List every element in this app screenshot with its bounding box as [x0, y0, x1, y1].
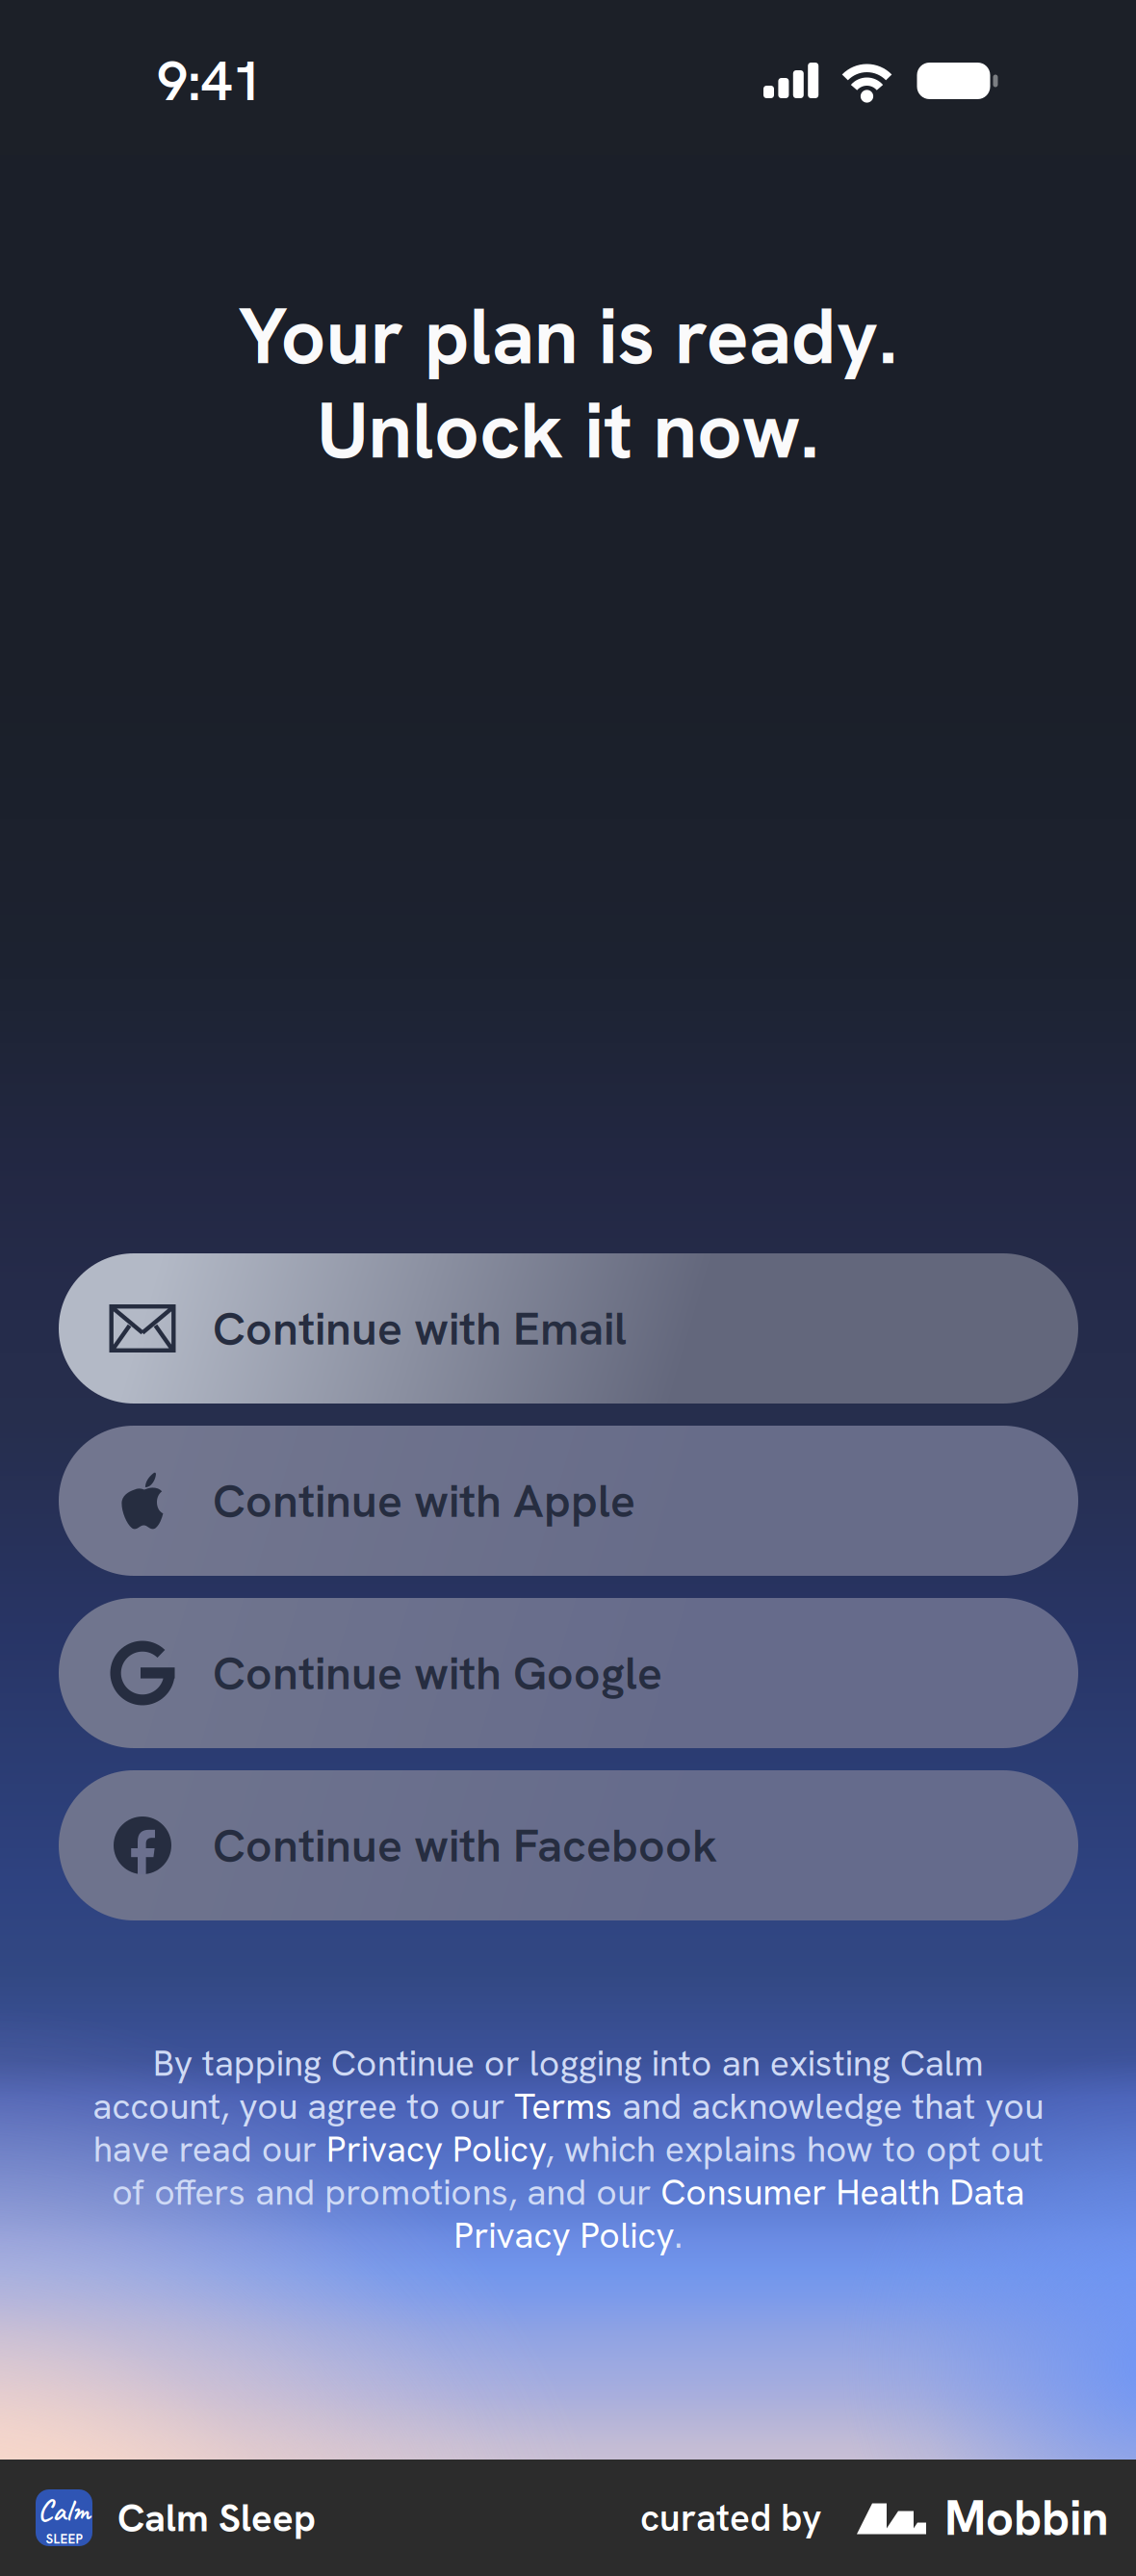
- staticText: By tapping Continue or logging into an e…: [92, 2040, 1044, 2259]
- staticText: SLEEP: [46, 2531, 82, 2548]
- staticText: 9:41: [157, 45, 263, 117]
- staticText: curated by: [640, 2494, 821, 2542]
- staticText: Continue with Email: [213, 1298, 627, 1358]
- button[interactable]: Continue with Apple: [59, 1426, 1078, 1576]
- staticText: Calm Sleep: [117, 2493, 316, 2543]
- staticText: Mobbin: [944, 2486, 1109, 2550]
- staticText: Your plan is ready. Unlock it now.: [238, 285, 898, 481]
- staticText: Continue with Apple: [213, 1471, 635, 1531]
- button[interactable]: Continue with Email: [59, 1253, 1078, 1404]
- staticText: Continue with Google: [213, 1643, 662, 1703]
- staticText: Calm: [38, 2491, 90, 2530]
- staticText: Continue with Facebook: [213, 1815, 717, 1875]
- button[interactable]: Continue with Facebook: [59, 1770, 1078, 1920]
- button[interactable]: Continue with Google: [59, 1598, 1078, 1748]
